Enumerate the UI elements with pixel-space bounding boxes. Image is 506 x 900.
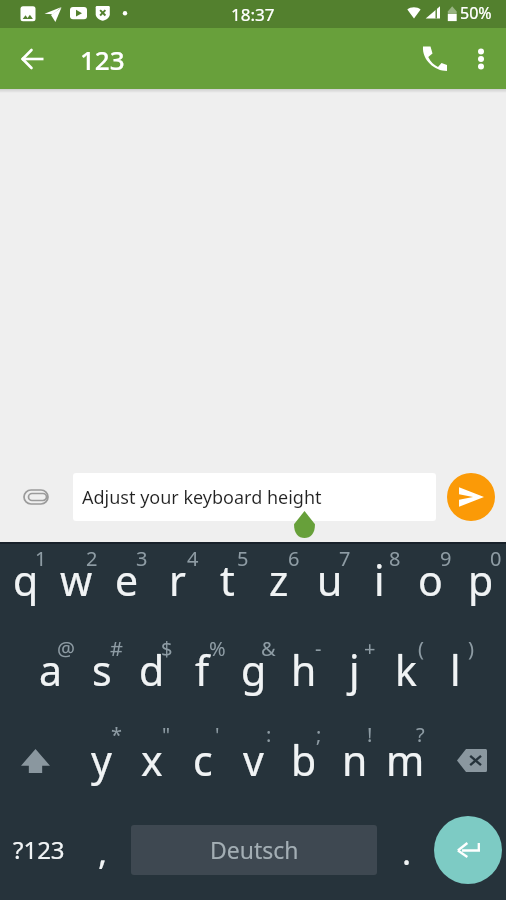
staticText: 0 bbox=[490, 545, 502, 572]
staticText: l bbox=[450, 642, 461, 698]
staticText: a bbox=[39, 642, 63, 698]
staticText: n bbox=[342, 732, 368, 788]
button[interactable]: 7 bbox=[304, 540, 355, 630]
staticText: s bbox=[92, 642, 112, 698]
staticText: u bbox=[317, 552, 343, 608]
staticText: & bbox=[261, 635, 276, 662]
staticText: ' bbox=[215, 721, 220, 748]
staticText: y bbox=[91, 732, 112, 788]
button[interactable]: ) bbox=[430, 630, 481, 720]
button[interactable]: ?123 bbox=[0, 810, 77, 900]
button[interactable]: & bbox=[228, 630, 279, 720]
staticText: k bbox=[395, 642, 417, 698]
staticText: h bbox=[291, 642, 317, 698]
button[interactable]: 5 bbox=[202, 540, 253, 630]
staticText: j bbox=[349, 642, 360, 698]
button[interactable]: Adjust your keyboard height bbox=[73, 473, 436, 521]
staticText: $ bbox=[161, 635, 173, 662]
staticText: 2 bbox=[86, 545, 98, 572]
staticText: ; bbox=[316, 721, 322, 748]
staticText: 1 bbox=[35, 545, 47, 572]
staticText: " bbox=[162, 721, 171, 748]
button[interactable]: ? bbox=[380, 720, 431, 810]
staticText: p bbox=[468, 552, 494, 608]
button[interactable]: @ bbox=[25, 630, 76, 720]
staticText: ) bbox=[468, 635, 474, 662]
staticText: - bbox=[315, 635, 322, 662]
staticText: ? bbox=[416, 721, 425, 748]
staticText: 123 bbox=[80, 42, 125, 77]
button[interactable]: 1 bbox=[0, 540, 51, 630]
button[interactable]: " bbox=[126, 720, 177, 810]
button[interactable]: . bbox=[381, 810, 429, 900]
staticText: w bbox=[60, 552, 93, 608]
button[interactable]: ( bbox=[380, 630, 431, 720]
button[interactable]: ! bbox=[329, 720, 380, 810]
button[interactable]: % bbox=[177, 630, 228, 720]
staticText: : bbox=[266, 721, 272, 748]
button[interactable]: * bbox=[76, 720, 127, 810]
button[interactable]: 4 bbox=[152, 540, 203, 630]
staticText: b bbox=[291, 732, 317, 788]
button[interactable]: # bbox=[76, 630, 127, 720]
button[interactable]: Deutsch bbox=[131, 825, 377, 875]
staticText: o bbox=[418, 552, 443, 608]
button[interactable]: 8 bbox=[354, 540, 405, 630]
button[interactable]: 3 bbox=[101, 540, 152, 630]
staticText: ( bbox=[418, 635, 424, 662]
staticText: q bbox=[13, 552, 39, 608]
staticText: t bbox=[220, 552, 235, 608]
staticText: Adjust your keyboard height bbox=[82, 485, 322, 510]
button[interactable]: Send bbox=[447, 473, 495, 521]
staticText: d bbox=[139, 642, 165, 698]
staticText: e bbox=[115, 552, 139, 608]
button[interactable]: , bbox=[77, 810, 127, 900]
staticText: . bbox=[402, 829, 412, 875]
staticText: 5 bbox=[237, 545, 249, 572]
button[interactable]: : bbox=[228, 720, 279, 810]
button[interactable]: + bbox=[329, 630, 380, 720]
button[interactable]: Call bbox=[411, 35, 459, 83]
button[interactable]: 0 bbox=[455, 540, 506, 630]
staticText: 7 bbox=[339, 545, 351, 572]
staticText: , bbox=[98, 829, 108, 875]
button[interactable]: 9 bbox=[405, 540, 456, 630]
staticText: c bbox=[193, 732, 213, 788]
staticText: f bbox=[195, 642, 210, 698]
button[interactable]: Back bbox=[8, 35, 56, 83]
staticText: 50% bbox=[460, 2, 492, 24]
staticText: Deutsch bbox=[210, 834, 299, 865]
staticText: g bbox=[241, 642, 267, 698]
button[interactable]: Shift bbox=[0, 720, 76, 810]
staticText: % bbox=[209, 635, 226, 662]
staticText: # bbox=[110, 635, 123, 662]
staticText: i bbox=[374, 552, 385, 608]
staticText: 4 bbox=[187, 545, 199, 572]
button[interactable]: 6 bbox=[253, 540, 304, 630]
staticText: 6 bbox=[288, 545, 300, 572]
staticText: ! bbox=[367, 721, 373, 748]
staticText: 3 bbox=[136, 545, 148, 572]
staticText: + bbox=[364, 635, 376, 662]
staticText: z bbox=[269, 552, 289, 608]
button[interactable]: ; bbox=[278, 720, 329, 810]
button[interactable]: Enter bbox=[434, 816, 502, 884]
button[interactable]: Backspace bbox=[430, 720, 506, 810]
button[interactable]: More options bbox=[457, 35, 505, 83]
staticText: * bbox=[111, 721, 123, 748]
staticText: v bbox=[243, 732, 264, 788]
staticText: 8 bbox=[389, 545, 401, 572]
staticText: x bbox=[141, 732, 163, 788]
button[interactable]: ' bbox=[177, 720, 228, 810]
button[interactable]: - bbox=[278, 630, 329, 720]
staticText: 9 bbox=[440, 545, 452, 572]
staticText: ?123 bbox=[13, 833, 65, 866]
button[interactable]: Attach file bbox=[12, 473, 60, 521]
staticText: m bbox=[386, 732, 425, 788]
staticText: 18:37 bbox=[231, 3, 275, 26]
staticText: @ bbox=[57, 635, 75, 662]
button[interactable]: $ bbox=[126, 630, 177, 720]
staticText: r bbox=[169, 552, 186, 608]
button[interactable]: 2 bbox=[51, 540, 102, 630]
